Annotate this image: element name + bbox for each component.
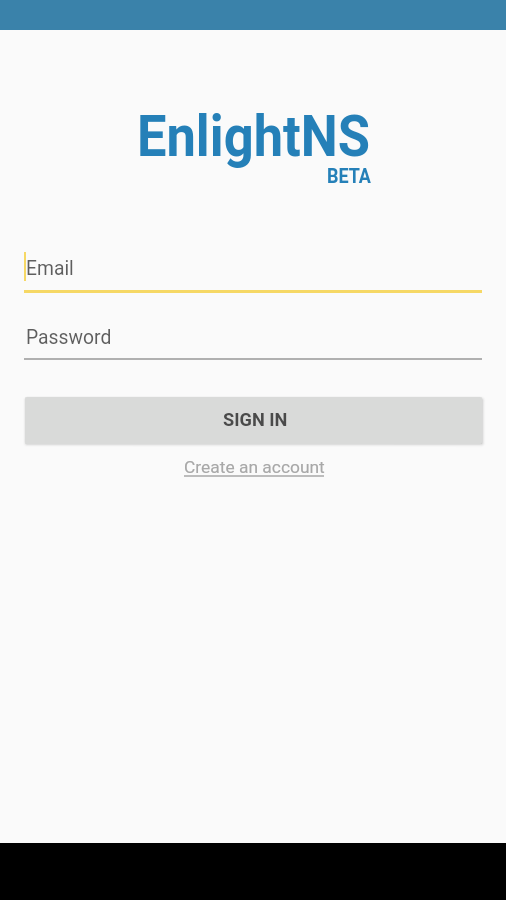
staticText: Create an account: [184, 457, 325, 477]
button[interactable]: Password: [24, 321, 482, 360]
button[interactable]: Create an account: [178, 452, 329, 484]
staticText: Email: [26, 257, 74, 280]
staticText: BETA: [327, 164, 371, 187]
button[interactable]: Email: [24, 252, 482, 293]
staticText: SIGN IN: [223, 409, 288, 430]
staticText: Password: [26, 326, 112, 349]
staticText: EnlightNS: [137, 103, 371, 170]
button[interactable]: SIGN IN: [25, 397, 482, 444]
